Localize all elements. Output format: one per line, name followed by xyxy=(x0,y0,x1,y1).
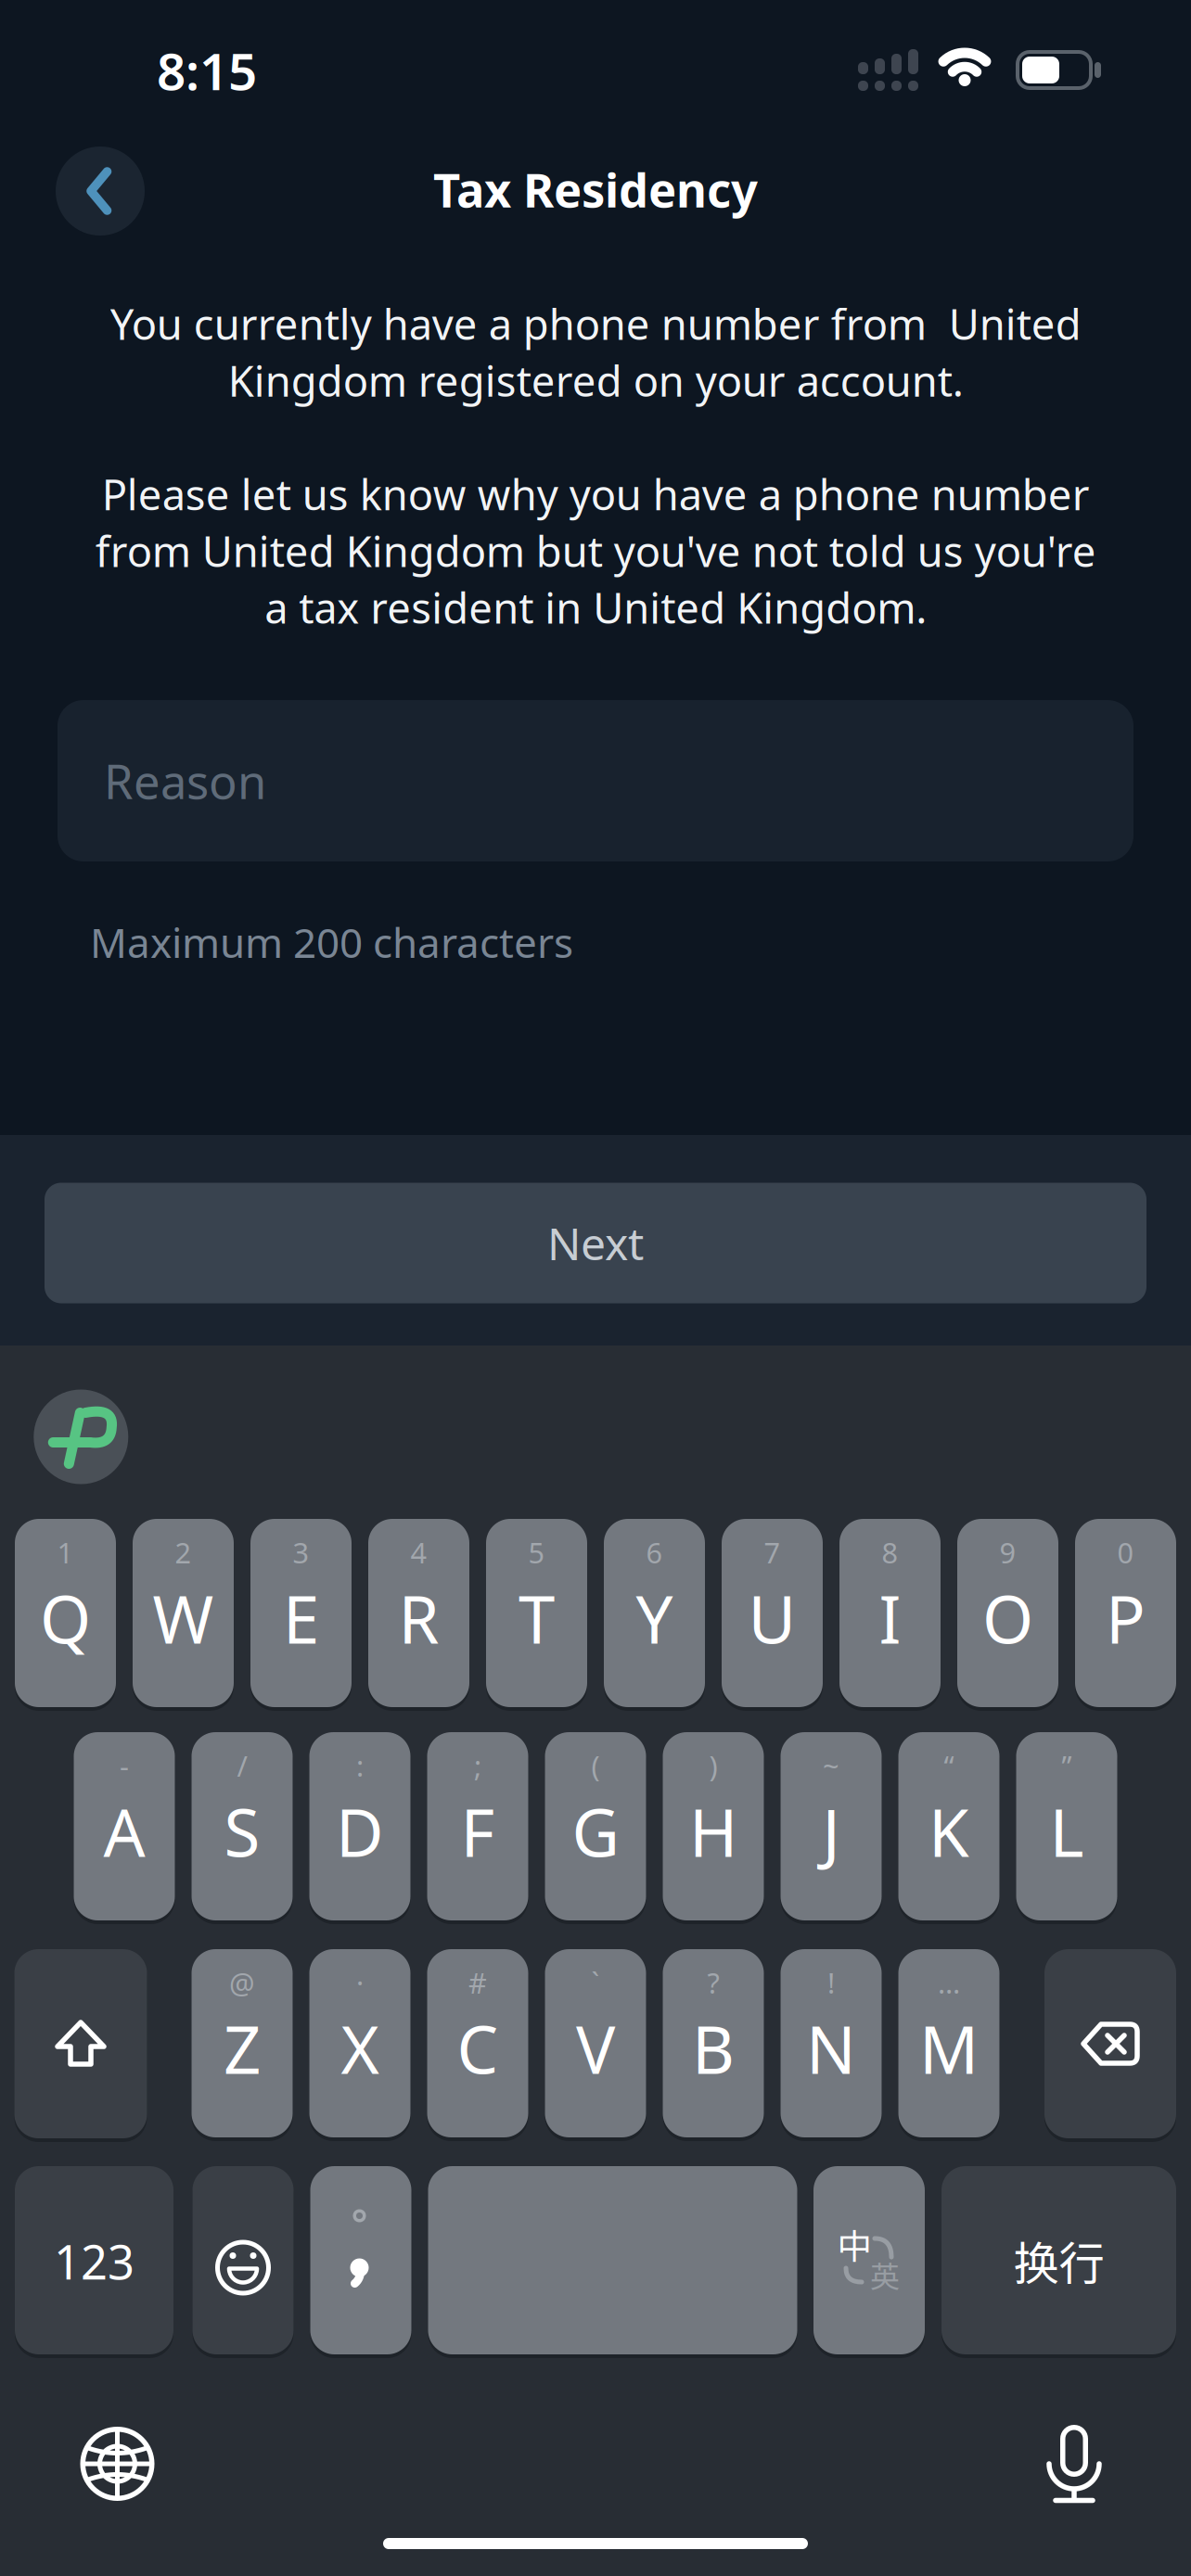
staticText: Tax Residency xyxy=(433,158,758,220)
staticText: ( xyxy=(591,1747,600,1784)
button[interactable]: Delete xyxy=(1044,1949,1176,2138)
button[interactable]: ; xyxy=(427,1732,528,1920)
staticText: H xyxy=(689,1788,737,1875)
button[interactable]: 6 xyxy=(604,1519,705,1707)
button[interactable]: 3 xyxy=(250,1519,352,1707)
staticText: O xyxy=(982,1575,1033,1662)
staticText: ~ xyxy=(823,1747,839,1784)
staticText: 123 xyxy=(54,2230,134,2292)
staticText: / xyxy=(237,1747,247,1784)
staticText: J xyxy=(822,1788,840,1875)
staticText: @ xyxy=(229,1964,255,2001)
button[interactable]: ? xyxy=(663,1949,764,2137)
button[interactable]: ! xyxy=(781,1949,882,2137)
button[interactable]: Dictate xyxy=(1044,2416,1104,2505)
staticText: 4 xyxy=(410,1533,427,1571)
staticText: X xyxy=(341,2005,379,2092)
staticText: 3 xyxy=(293,1533,309,1571)
button[interactable]: 9 xyxy=(957,1519,1058,1707)
button[interactable]: 7 xyxy=(722,1519,823,1707)
staticText: 7 xyxy=(764,1533,781,1571)
button[interactable]: 8 xyxy=(839,1519,941,1707)
staticText: ! xyxy=(827,1964,835,2001)
staticText: 中 xyxy=(837,2219,871,2269)
staticText: S xyxy=(224,1788,260,1875)
button[interactable]: 换行 xyxy=(941,2166,1176,2354)
staticText: ? xyxy=(707,1964,719,2001)
staticText: “ xyxy=(944,1747,954,1784)
button[interactable]: - xyxy=(74,1732,175,1920)
button[interactable]: @ xyxy=(192,1949,293,2137)
button[interactable]: Space xyxy=(428,2166,797,2354)
staticText: Y xyxy=(636,1575,673,1662)
staticText: Maximum 200 characters xyxy=(90,915,573,969)
button[interactable]: 0 xyxy=(1075,1519,1176,1707)
button[interactable]: Back xyxy=(56,147,145,236)
staticText: 5 xyxy=(528,1533,545,1571)
staticText: U xyxy=(748,1575,796,1662)
staticText: F xyxy=(461,1788,495,1875)
staticText: K xyxy=(928,1788,969,1875)
staticText: You currently have a phone number from U… xyxy=(95,296,1096,635)
staticText: 9 xyxy=(999,1533,1016,1571)
staticText: W xyxy=(153,1575,214,1662)
staticText: · xyxy=(356,1964,364,2001)
staticText: R xyxy=(398,1575,439,1662)
staticText: 1 xyxy=(57,1533,74,1571)
button[interactable]: Emoji xyxy=(192,2166,294,2354)
button[interactable]: Switch language xyxy=(813,2166,925,2354)
staticText: 英 xyxy=(870,2253,900,2296)
button[interactable]: 123 xyxy=(15,2166,173,2354)
staticText: 0 xyxy=(1117,1533,1134,1571)
staticText: A xyxy=(103,1788,145,1875)
staticText: P xyxy=(1106,1575,1146,1662)
button[interactable]: “ xyxy=(898,1732,999,1920)
button[interactable]: Next keyboard xyxy=(80,2427,154,2501)
button[interactable]: Shift xyxy=(14,1949,147,2138)
staticText: G xyxy=(572,1788,619,1875)
button[interactable]: Next xyxy=(45,1183,1146,1303)
staticText: I xyxy=(879,1575,901,1662)
button[interactable]: 5 xyxy=(486,1519,587,1707)
button[interactable]: Comma xyxy=(310,2166,411,2354)
button[interactable]: … xyxy=(898,1949,999,2137)
button[interactable]: · xyxy=(309,1949,410,2137)
staticText: E xyxy=(283,1575,319,1662)
button[interactable]: ( xyxy=(545,1732,646,1920)
staticText: 换行 xyxy=(1013,2227,1104,2293)
button[interactable]: / xyxy=(192,1732,293,1920)
staticText: 8:15 xyxy=(157,37,257,104)
staticText: M xyxy=(919,2005,979,2092)
staticText: - xyxy=(120,1747,129,1784)
staticText: T xyxy=(519,1575,555,1662)
staticText: V xyxy=(576,2005,615,2092)
staticText: D xyxy=(336,1788,384,1875)
staticText: 6 xyxy=(646,1533,663,1571)
staticText: N xyxy=(806,2005,856,2092)
staticText: Q xyxy=(40,1575,91,1662)
button[interactable]: 4 xyxy=(368,1519,469,1707)
staticText: B xyxy=(692,2005,735,2092)
staticText: C xyxy=(457,2005,499,2092)
staticText: Reason xyxy=(104,750,266,812)
staticText: 8 xyxy=(882,1533,898,1571)
staticText: ” xyxy=(1062,1747,1072,1784)
staticText: ; xyxy=(474,1747,481,1784)
button[interactable]: ” xyxy=(1016,1732,1117,1920)
button[interactable]: # xyxy=(427,1949,528,2137)
button[interactable]: 2 xyxy=(133,1519,234,1707)
staticText: … xyxy=(938,1964,960,2001)
staticText: ) xyxy=(709,1747,717,1784)
staticText: Next xyxy=(547,1213,644,1273)
button[interactable]: Proton Pass xyxy=(34,1390,128,1484)
button[interactable]: ~ xyxy=(781,1732,882,1920)
button[interactable]: : xyxy=(309,1732,410,1920)
staticText: # xyxy=(468,1964,487,2001)
button[interactable]: ` xyxy=(545,1949,646,2137)
staticText: ` xyxy=(591,1964,600,2001)
staticText: Z xyxy=(224,2005,261,2092)
button[interactable]: ) xyxy=(663,1732,764,1920)
button[interactable]: 1 xyxy=(15,1519,116,1707)
staticText: : xyxy=(356,1747,364,1784)
staticText: L xyxy=(1050,1788,1084,1875)
